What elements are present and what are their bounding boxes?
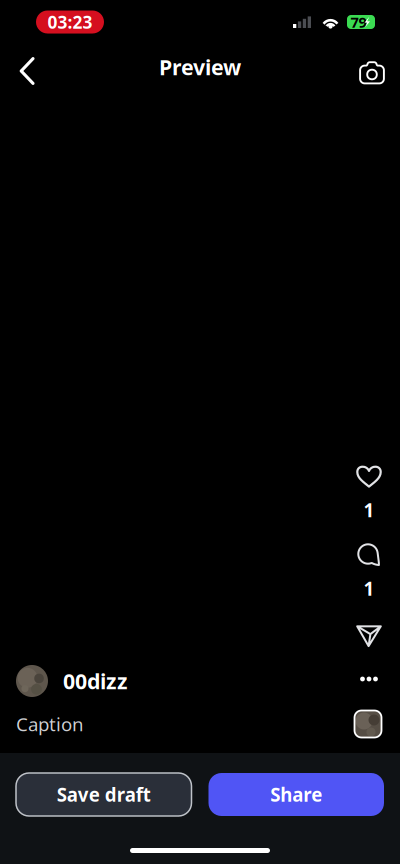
button[interactable]: More options — [343, 662, 395, 696]
button[interactable]: Camera — [348, 44, 396, 90]
button[interactable]: Share — [208, 773, 384, 816]
button[interactable]: 00dizz — [0, 661, 320, 701]
button[interactable]: Like — [343, 463, 395, 521]
staticText: Save draft — [57, 782, 151, 807]
staticText: Caption — [16, 712, 84, 736]
staticText: 00dizz — [63, 667, 128, 695]
staticText: 03:23 — [47, 10, 92, 33]
staticText: 1 — [363, 498, 374, 522]
staticText: Preview — [159, 53, 241, 81]
staticText: Share — [270, 782, 322, 807]
staticText: 1 — [363, 576, 374, 601]
button[interactable]: Caption — [0, 707, 260, 741]
button[interactable]: Send — [343, 616, 395, 656]
button[interactable]: Cover photo — [346, 704, 390, 744]
button[interactable]: Back — [4, 44, 52, 90]
button[interactable]: Comment — [343, 542, 395, 600]
button[interactable]: Save draft — [16, 773, 191, 816]
staticText: 79 — [350, 12, 366, 32]
